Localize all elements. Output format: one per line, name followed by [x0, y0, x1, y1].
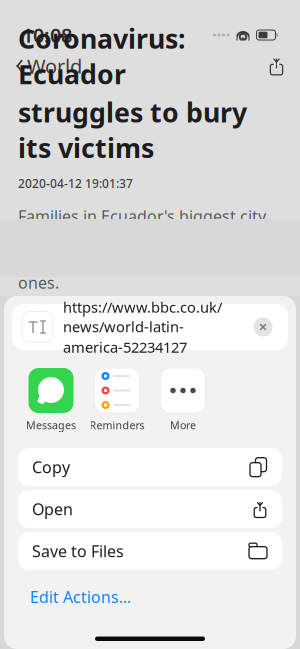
staticText: 2020-04-12 19:01:37 [18, 175, 133, 191]
staticText: 10:08 [22, 22, 72, 48]
button[interactable]: More [150, 368, 216, 432]
staticText: https://www.bbc.co.uk/news/world-latin- [63, 297, 222, 336]
staticText: World [27, 53, 82, 79]
staticText: struggles to bury its victims [18, 94, 247, 165]
staticText: Families in Ecuador's biggest city are f… [18, 205, 266, 248]
button[interactable]: Open [18, 490, 282, 528]
staticText: america-52234127 [63, 337, 187, 357]
button[interactable]: Share [258, 51, 295, 81]
button[interactable]: Close [248, 312, 278, 342]
staticText: Messages [26, 418, 76, 432]
button[interactable]: Edit Actions... [28, 580, 133, 613]
staticText: More [170, 418, 196, 432]
staticText: Copy [32, 456, 70, 478]
button[interactable]: World [5, 47, 92, 85]
staticText: Reminders [89, 418, 144, 432]
button[interactable]: Save to Files [18, 532, 282, 570]
staticText: Save to Files [32, 540, 124, 562]
staticText: Edit Actions... [30, 586, 131, 607]
button[interactable]: Reminders [84, 368, 150, 432]
button[interactable]: Copy [18, 448, 282, 486]
staticText: Open [32, 498, 73, 520]
staticText: the struggle to bury their loved ones. [18, 251, 254, 293]
button[interactable]: Messages [18, 368, 84, 432]
staticText: Coronavirus: Ecuador [18, 21, 185, 91]
